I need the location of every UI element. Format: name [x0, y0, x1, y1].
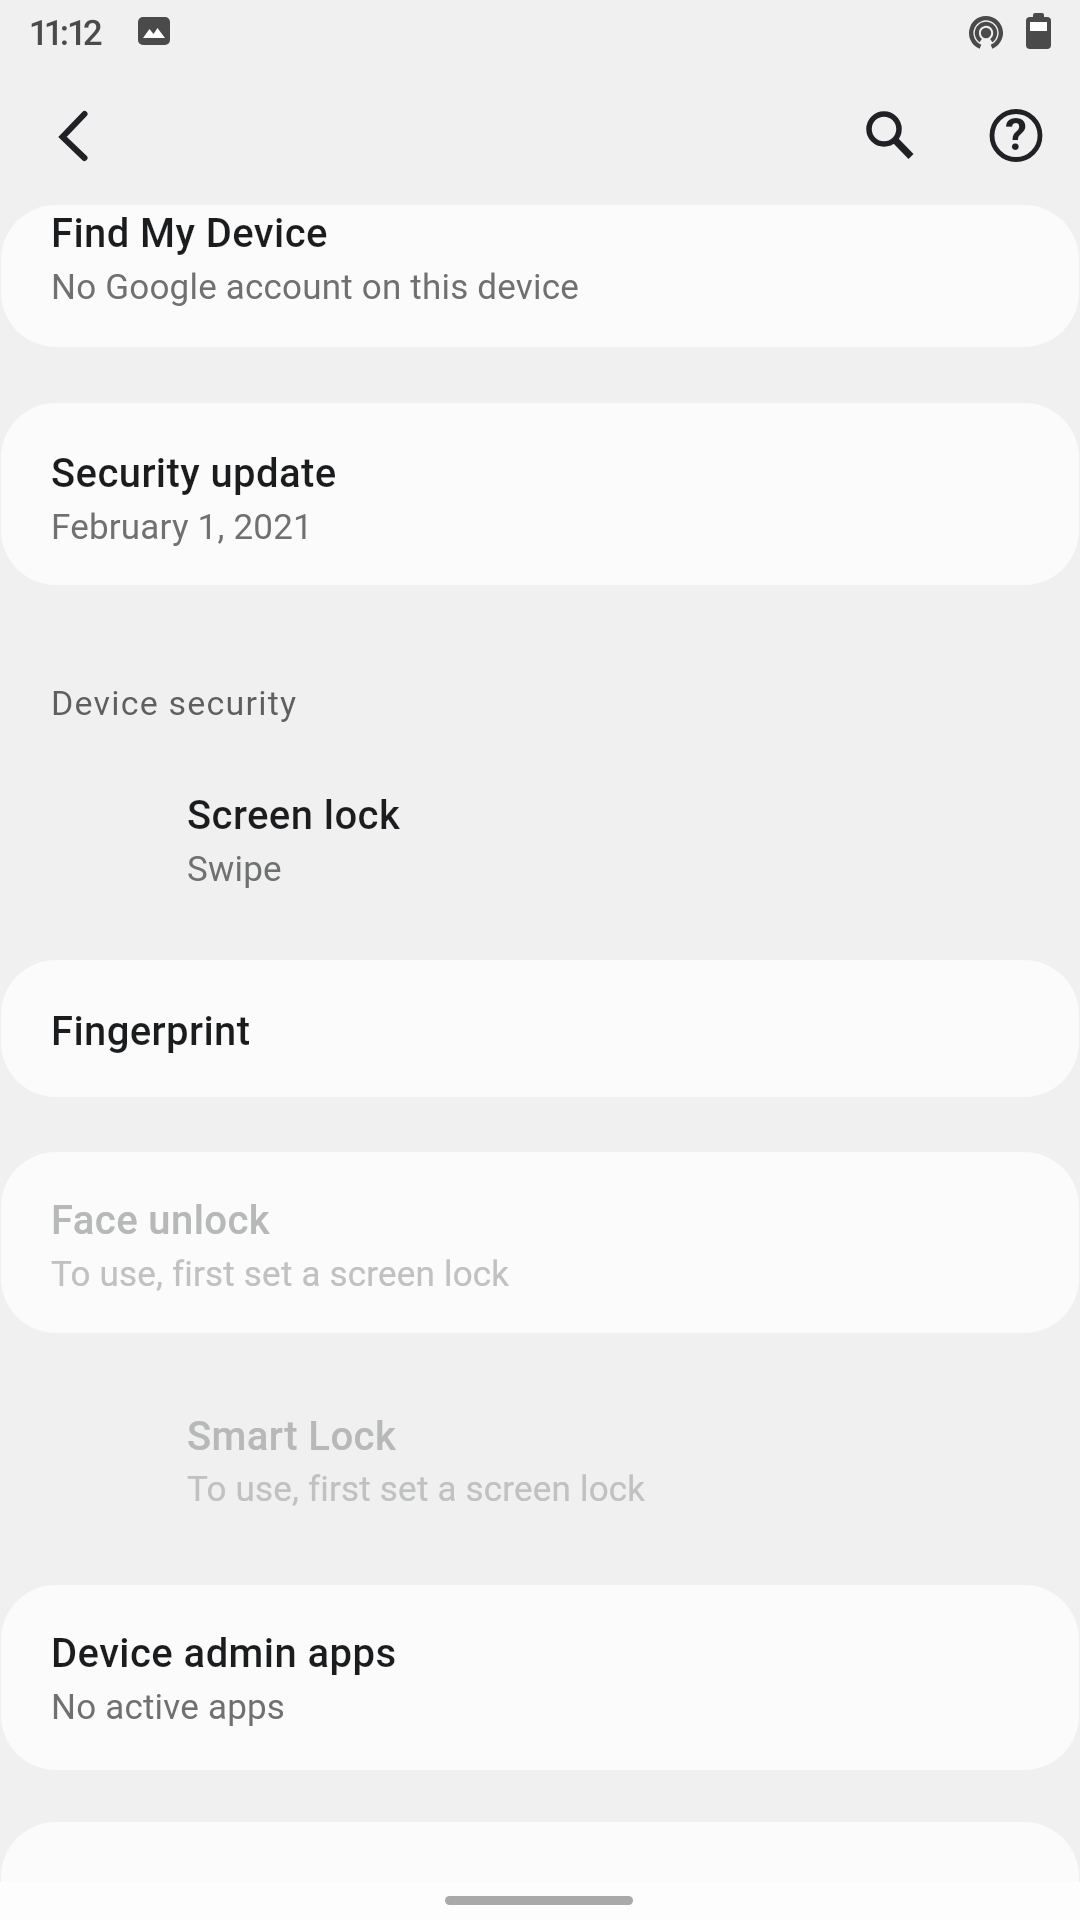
button[interactable] — [1, 960, 1079, 1097]
staticText: Security update — [51, 450, 337, 497]
staticText: February 1, 2021 — [51, 507, 313, 548]
staticText: Fingerprint — [51, 1008, 251, 1055]
staticText: Face unlock — [51, 1197, 271, 1244]
staticText: Find My Device — [51, 210, 328, 257]
button[interactable] — [0, 1390, 1080, 1535]
staticText: Swipe — [187, 849, 282, 890]
button[interactable] — [1, 1822, 1079, 1920]
staticText: Smart Lock — [187, 1413, 397, 1460]
staticText: Device admin apps — [51, 1630, 397, 1677]
button[interactable] — [1, 205, 1079, 347]
button[interactable] — [1, 1585, 1079, 1770]
button[interactable] — [1, 1152, 1079, 1333]
staticText: To use, first set a screen lock — [187, 1469, 646, 1510]
button[interactable] — [855, 102, 923, 170]
staticText: No Google account on this device — [51, 267, 579, 308]
button[interactable] — [1, 403, 1079, 585]
staticText: Screen lock — [187, 792, 401, 839]
staticText: No active apps — [51, 1687, 286, 1728]
button[interactable] — [40, 103, 108, 171]
button[interactable]: ? — [981, 100, 1051, 170]
staticText: To use, first set a screen lock — [187, 1878, 646, 1919]
staticText: 11:12 — [30, 13, 102, 54]
staticText: Device security — [51, 683, 298, 723]
staticText: To use, first set a screen lock — [51, 1254, 510, 1295]
button[interactable] — [0, 770, 1080, 915]
staticText: ? — [1005, 109, 1027, 161]
